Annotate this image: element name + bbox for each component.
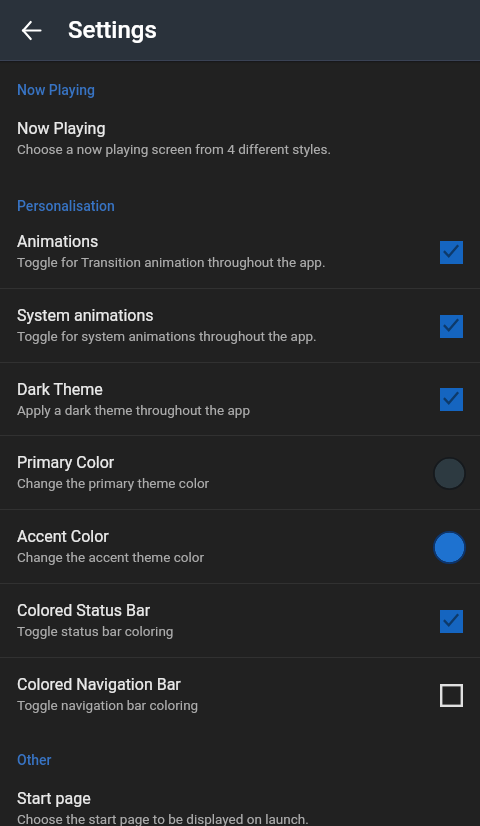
- staticText: Toggle for system animations throughout …: [17, 328, 317, 344]
- button[interactable]: Colored Navigation Bar: [0, 658, 480, 731]
- staticText: Change the accent theme color: [17, 549, 205, 565]
- staticText: Personalisation: [17, 198, 115, 214]
- button[interactable]: Checked: [431, 379, 471, 419]
- staticText: Colored Navigation Bar: [17, 675, 181, 694]
- staticText: Choose a now playing screen from 4 diffe…: [17, 141, 332, 157]
- button[interactable]: Animations: [0, 215, 480, 288]
- button[interactable]: Back: [11, 10, 51, 50]
- staticText: Now Playing: [17, 119, 106, 138]
- staticText: Primary Color: [17, 453, 115, 472]
- staticText: System animations: [17, 306, 154, 325]
- button[interactable]: Primary Color: [0, 436, 480, 509]
- button[interactable]: Pick color: [427, 525, 471, 569]
- staticText: Settings: [68, 16, 157, 44]
- button[interactable]: Checked: [431, 306, 471, 346]
- staticText: Colored Status Bar: [17, 601, 151, 620]
- staticText: Start page: [17, 789, 91, 808]
- staticText: Dark Theme: [17, 380, 103, 399]
- staticText: Apply a dark theme throughout the app: [17, 402, 250, 418]
- button[interactable]: Now Playing: [0, 102, 480, 175]
- button[interactable]: Dark Theme: [0, 363, 480, 435]
- staticText: Toggle for Transition animation througho…: [17, 254, 326, 270]
- button[interactable]: Checked: [431, 601, 471, 641]
- button[interactable]: System animations: [0, 289, 480, 362]
- button[interactable]: Pick color: [427, 451, 471, 495]
- button[interactable]: Unchecked: [431, 675, 471, 715]
- button[interactable]: Start page: [0, 772, 480, 826]
- button[interactable]: Accent Color: [0, 510, 480, 583]
- button[interactable]: Checked: [431, 232, 471, 272]
- staticText: Toggle status bar coloring: [17, 623, 174, 639]
- staticText: Animations: [17, 232, 99, 251]
- button[interactable]: Colored Status Bar: [0, 584, 480, 657]
- staticText: Choose the start page to be displayed on…: [17, 811, 309, 826]
- staticText: Other: [17, 752, 52, 768]
- staticText: Change the primary theme color: [17, 475, 210, 491]
- staticText: Toggle navigation bar coloring: [17, 697, 199, 713]
- staticText: Accent Color: [17, 527, 109, 546]
- staticText: Now Playing: [17, 82, 95, 98]
